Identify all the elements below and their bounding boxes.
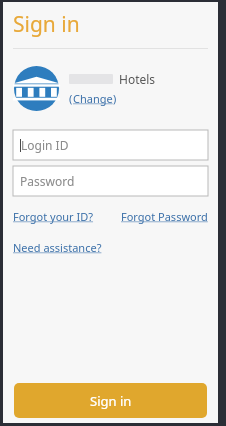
staticText: Need assistance? (13, 240, 102, 255)
staticText: Change (73, 91, 113, 106)
button[interactable]: Sign in (14, 383, 207, 418)
button[interactable]: Login ID (13, 130, 208, 160)
button[interactable]: Forgot your ID? (13, 209, 94, 224)
button[interactable]: Need assistance? (13, 240, 102, 255)
staticText: Login ID (21, 137, 69, 153)
staticText: ( (69, 91, 73, 106)
staticText: Password (20, 173, 75, 189)
button[interactable]: Password (13, 166, 208, 196)
staticText: Forgot Password (121, 209, 208, 224)
staticText: ) (113, 91, 117, 106)
other: Bank logo (14, 66, 59, 111)
staticText: Hotels (119, 71, 156, 87)
button[interactable]: Forgot Password (121, 209, 208, 224)
staticText: Sign in (90, 392, 132, 410)
button[interactable]: ( (69, 91, 117, 106)
staticText: Forgot your ID? (13, 209, 94, 224)
staticText: Sign in (13, 10, 80, 39)
